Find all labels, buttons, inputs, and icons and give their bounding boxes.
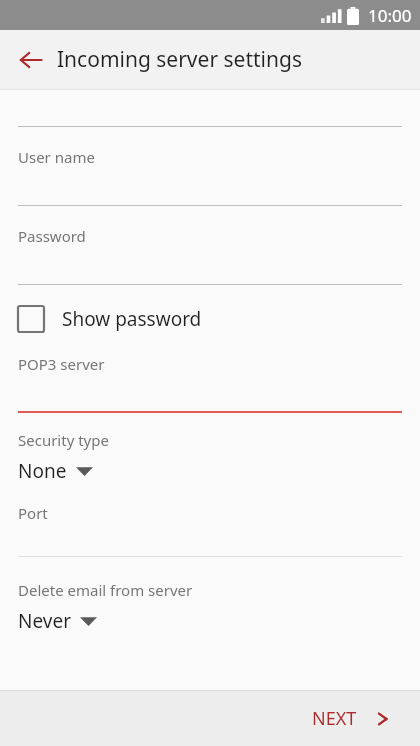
button[interactable]: Never [0,606,420,636]
staticText: Delete email from server [18,580,193,600]
staticText: Port [18,503,48,523]
staticText: Incoming server settings [57,45,302,74]
staticText: 10:00 [368,4,412,27]
staticText: NEXT [312,706,357,731]
button[interactable]: Show password [0,302,420,336]
staticText: User name [18,147,95,167]
staticText: Password [18,226,86,246]
button[interactable]: NEXT [244,691,420,746]
staticText: POP3 server [18,354,105,374]
staticText: Show password [62,306,202,332]
staticText: Security type [18,430,109,450]
button[interactable]: Back [10,39,52,81]
button[interactable]: None [0,456,420,486]
staticText: None [18,458,67,484]
staticText: Never [18,608,71,634]
